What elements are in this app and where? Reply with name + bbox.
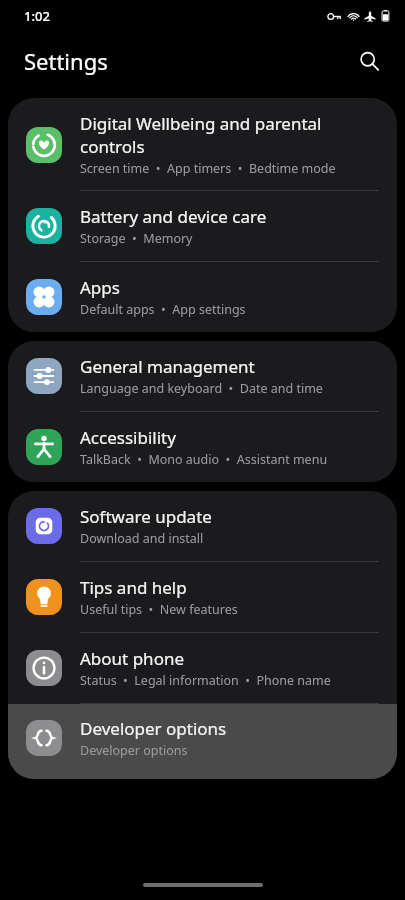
staticText: Useful tips • New features: [80, 601, 238, 618]
button[interactable]: Battery and device care: [8, 191, 397, 261]
button[interactable]: Software update: [8, 491, 397, 561]
staticText: Default apps • App settings: [80, 301, 246, 318]
staticText: Storage • Memory: [80, 230, 193, 247]
button[interactable]: About phone: [8, 633, 397, 703]
staticText: Battery and device care: [80, 205, 267, 228]
staticText: Tips and help: [80, 576, 187, 599]
staticText: General management: [80, 355, 255, 378]
staticText: Developer options: [80, 717, 227, 740]
button[interactable]: Accessibility: [8, 412, 397, 482]
staticText: About phone: [80, 647, 185, 670]
staticText: TalkBack • Mono audio • Assistant menu: [80, 451, 328, 468]
staticText: 1:02: [24, 7, 50, 25]
staticText: Digital Wellbeing and parental controls: [80, 112, 381, 158]
button[interactable]: Tips and help: [8, 562, 397, 632]
staticText: Apps: [80, 276, 120, 299]
button[interactable]: Digital Wellbeing and parental controls: [8, 98, 397, 190]
button[interactable]: Search settings: [349, 41, 389, 81]
staticText: Developer options: [80, 742, 188, 759]
staticText: Screen time • App timers • Bedtime mode: [80, 160, 336, 177]
staticText: Accessibility: [80, 426, 176, 449]
staticText: Status • Legal information • Phone name: [80, 672, 331, 689]
button[interactable]: Apps: [8, 262, 397, 332]
staticText: Download and install: [80, 530, 204, 547]
staticText: Settings: [24, 46, 108, 76]
staticText: Language and keyboard • Date and time: [80, 380, 323, 397]
button[interactable]: General management: [8, 341, 397, 411]
button[interactable]: Developer options: [8, 704, 397, 779]
staticText: Software update: [80, 505, 212, 528]
